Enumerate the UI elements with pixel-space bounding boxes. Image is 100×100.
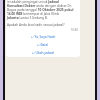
staticText: ↩ Ya, Saya Hadir (31, 35, 56, 39)
button[interactable]: ↩ Ya, Saya Hadir (6, 33, 80, 41)
staticText: ↩ Batal (37, 43, 49, 47)
staticText: ↩ Ubah jadwal (32, 51, 55, 55)
staticText: Bagus pada tanggal 10 Oktober 2025 pukul (7, 8, 74, 12)
staticText: Konsultasi Dokter anda dengan dokter Dr. (7, 4, 72, 8)
button[interactable]: ↩ Batal (6, 41, 80, 49)
staticText: Jakarta Lantai 3 Gedung B. (7, 16, 48, 20)
button[interactable]: ↩ Ubah jadwal (6, 49, 80, 57)
staticText: Apakah Anda bisa hadir sesuai jadwal? (7, 23, 65, 27)
staticText: 10:40 (71, 28, 78, 32)
staticText: ini adalah pengingat untuk Jadwal (7, 0, 59, 4)
staticText: 14.00 WIB bertempat di Jakis Klinik (7, 12, 60, 16)
